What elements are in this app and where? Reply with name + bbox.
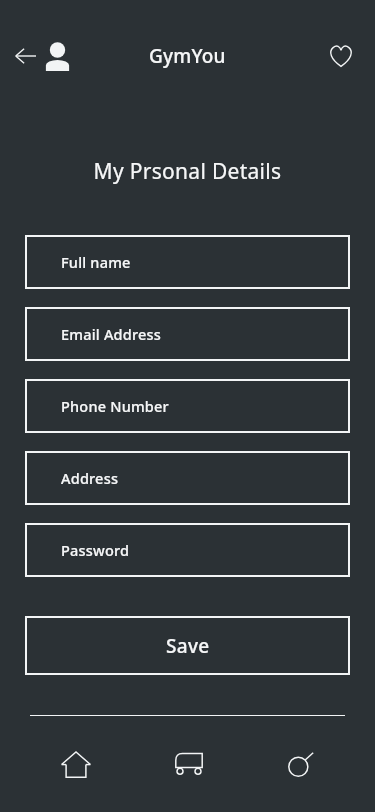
button[interactable]: Back to profile [10,35,75,77]
staticText: Password [61,540,130,560]
staticText: Save [166,633,210,659]
staticText: Phone Number [61,396,169,416]
button[interactable]: Address [25,451,350,505]
staticText: Email Address [61,324,162,344]
button[interactable]: Favorites [321,37,361,75]
button[interactable]: Save [25,616,350,675]
staticText: Address [61,468,119,488]
button[interactable]: Home [39,736,113,792]
button[interactable]: Email Address [25,307,350,361]
staticText: GymYou [149,43,226,69]
button[interactable]: Phone Number [25,379,350,433]
staticText: My Prsonal Details [0,157,375,186]
button[interactable]: Workout [264,736,336,792]
button[interactable]: Password [25,523,350,577]
button[interactable]: Cart [152,737,226,791]
button[interactable]: Full name [25,235,350,289]
staticText: Full name [61,252,131,272]
